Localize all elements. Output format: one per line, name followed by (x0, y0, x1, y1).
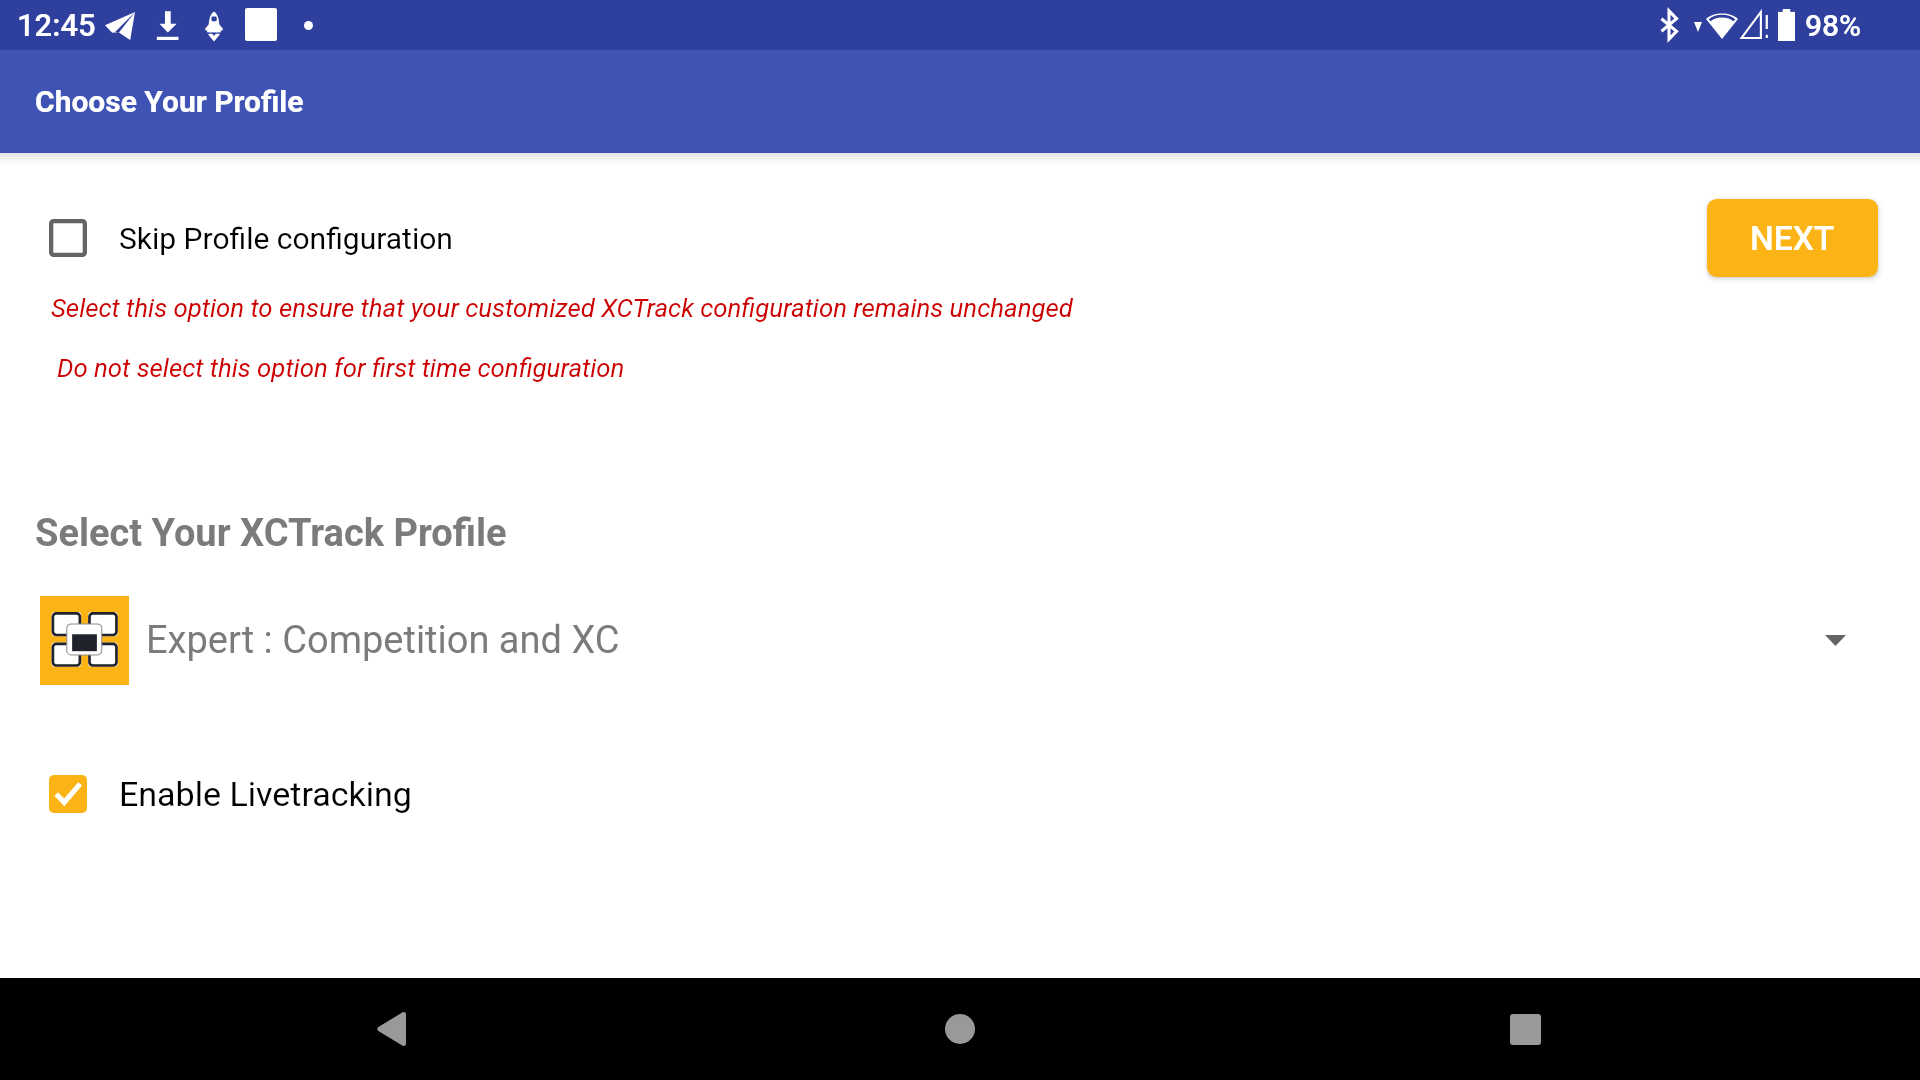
button[interactable]: Expert : Competition and XC (0, 596, 1920, 685)
button[interactable]: Back (343, 981, 439, 1077)
staticText: Select Your XCTrack Profile (35, 511, 507, 556)
staticText: Do not select this option for first time… (57, 353, 625, 383)
staticText: 12:45 (17, 7, 96, 43)
button[interactable]: Recent apps (1477, 981, 1573, 1077)
staticText: Expert : Competition and XC (146, 618, 620, 663)
staticText: Skip Profile configuration (119, 221, 453, 256)
staticText: NEXT (1750, 219, 1835, 258)
staticText: Select this option to ensure that your c… (51, 293, 1073, 323)
button[interactable]: Skip Profile configuration (41, 204, 453, 272)
button[interactable]: NEXT (1707, 199, 1878, 277)
staticText: Choose Your Profile (35, 84, 304, 119)
button[interactable]: Enable Livetracking (41, 760, 412, 828)
button[interactable]: Home (912, 981, 1008, 1077)
staticText: Enable Livetracking (119, 774, 412, 814)
staticText: 98% (1805, 8, 1862, 43)
